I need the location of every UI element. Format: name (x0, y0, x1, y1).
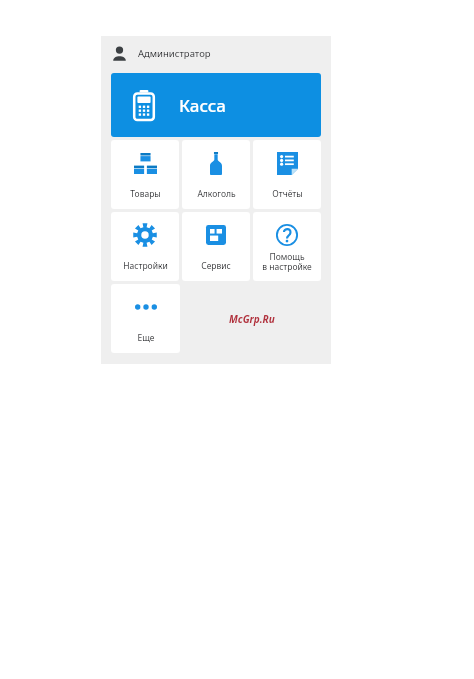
button[interactable]: Настройки (111, 212, 179, 281)
staticText: Алкоголь (197, 188, 236, 200)
staticText: Администратор (138, 47, 211, 60)
staticText: Касса (179, 94, 227, 117)
staticText: Еще (137, 332, 155, 344)
button[interactable]: Сервис (182, 212, 250, 281)
button[interactable]: Товары (111, 140, 179, 209)
staticText: Товары (130, 188, 161, 200)
button[interactable]: Администратор (101, 36, 331, 71)
button[interactable]: Отчёты (253, 140, 321, 209)
staticText: Отчёты (272, 188, 303, 200)
staticText: Сервис (201, 260, 231, 272)
button[interactable]: Алкоголь (182, 140, 250, 209)
button[interactable]: Касса (111, 73, 321, 137)
staticText: McGrp.Ru (229, 312, 275, 326)
button[interactable]: Помощь в настройке (253, 212, 321, 281)
button[interactable]: Еще (111, 284, 180, 353)
staticText: Настройки (123, 260, 168, 272)
staticText: Помощь в настройке (262, 251, 312, 272)
